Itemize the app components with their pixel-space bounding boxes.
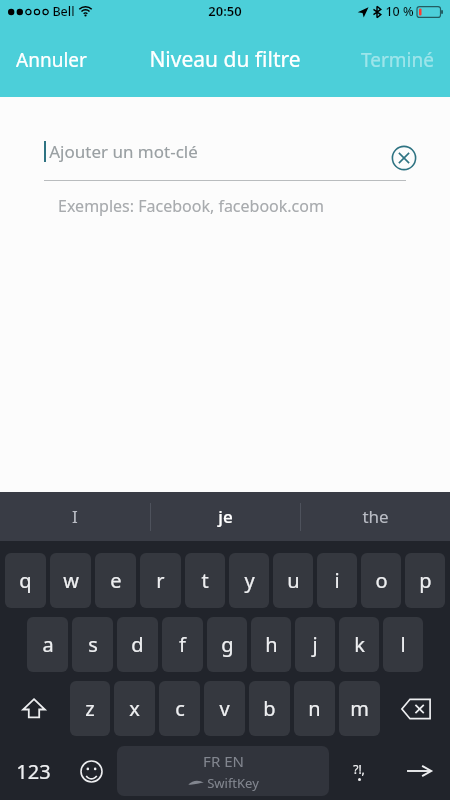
button[interactable]: i — [317, 553, 357, 608]
staticText: m — [350, 695, 369, 722]
staticText: FR EN — [203, 751, 244, 771]
staticText: Annuler — [16, 47, 87, 73]
staticText: c — [175, 695, 185, 722]
button[interactable]: Effacer — [391, 145, 417, 171]
button[interactable]: u — [273, 553, 313, 608]
button[interactable]: x — [114, 681, 155, 736]
button[interactable]: a — [27, 617, 68, 672]
button[interactable]: w — [50, 553, 91, 608]
button[interactable]: Ponctuation — [330, 745, 388, 797]
staticText: i — [334, 567, 340, 594]
button[interactable]: Ajouter un mot-clé — [0, 140, 450, 176]
staticText: j — [312, 631, 318, 658]
staticText: z — [85, 695, 95, 722]
staticText: je — [218, 505, 233, 528]
staticText: h — [265, 631, 278, 658]
staticText: Exemples: Facebook, facebook.com — [58, 195, 324, 217]
staticText: p — [419, 567, 432, 594]
button[interactable]: m — [339, 681, 380, 736]
button[interactable]: z — [70, 681, 110, 736]
staticText: Ajouter un mot-clé — [49, 140, 198, 163]
button[interactable]: FR EN — [117, 746, 329, 796]
button[interactable]: 123 — [0, 745, 66, 797]
button[interactable]: n — [294, 681, 335, 736]
button[interactable]: o — [361, 553, 401, 608]
staticText: I — [72, 505, 78, 528]
staticText: d — [131, 631, 144, 658]
button[interactable]: Terminé — [345, 37, 450, 83]
button[interactable]: k — [339, 617, 379, 672]
button[interactable]: q — [5, 553, 46, 608]
button[interactable]: v — [204, 681, 245, 736]
staticText: w — [63, 567, 79, 594]
staticText: q — [19, 567, 32, 594]
button[interactable]: t — [185, 553, 225, 608]
button[interactable]: b — [249, 681, 290, 736]
staticText: Bell — [52, 3, 75, 20]
staticText: o — [375, 567, 388, 594]
staticText: SwiftKey — [207, 774, 259, 792]
staticText: r — [156, 567, 165, 594]
staticText: 10 % — [385, 3, 414, 20]
button[interactable]: c — [159, 681, 200, 736]
staticText: the — [362, 505, 389, 528]
button[interactable]: j — [295, 617, 335, 672]
button[interactable]: d — [117, 617, 158, 672]
button[interactable]: e — [95, 553, 136, 608]
staticText: Niveau du filtre — [149, 45, 301, 74]
staticText: g — [221, 631, 234, 658]
staticText: e — [110, 567, 122, 594]
button[interactable]: je — [151, 492, 300, 541]
staticText: a — [42, 631, 54, 658]
button[interactable]: I — [0, 492, 150, 541]
staticText: u — [287, 567, 300, 594]
staticText: s — [88, 631, 98, 658]
staticText: b — [263, 695, 276, 722]
button[interactable]: the — [301, 492, 450, 541]
button[interactable]: s — [72, 617, 113, 672]
staticText: 20:50 — [208, 2, 242, 20]
staticText: l — [400, 631, 406, 658]
staticText: t — [201, 567, 209, 594]
staticText: k — [354, 631, 365, 658]
staticText: ?!, — [353, 761, 365, 777]
button[interactable]: Annuler — [0, 37, 103, 83]
staticText: y — [244, 567, 255, 594]
staticText: x — [129, 695, 140, 722]
button[interactable]: r — [140, 553, 181, 608]
button[interactable]: p — [405, 553, 445, 608]
button[interactable]: Retour arrière — [382, 681, 450, 736]
button[interactable]: Majuscule — [0, 681, 68, 736]
button[interactable]: l — [383, 617, 423, 672]
staticText: 123 — [16, 758, 51, 785]
staticText: Terminé — [361, 47, 434, 73]
staticText: v — [219, 695, 230, 722]
button[interactable]: h — [251, 617, 291, 672]
button[interactable]: Entrée — [388, 745, 450, 797]
staticText: f — [179, 631, 186, 658]
staticText: n — [308, 695, 321, 722]
button[interactable]: y — [229, 553, 269, 608]
button[interactable]: f — [162, 617, 203, 672]
button[interactable]: Emoji — [66, 745, 116, 797]
button[interactable]: g — [207, 617, 247, 672]
